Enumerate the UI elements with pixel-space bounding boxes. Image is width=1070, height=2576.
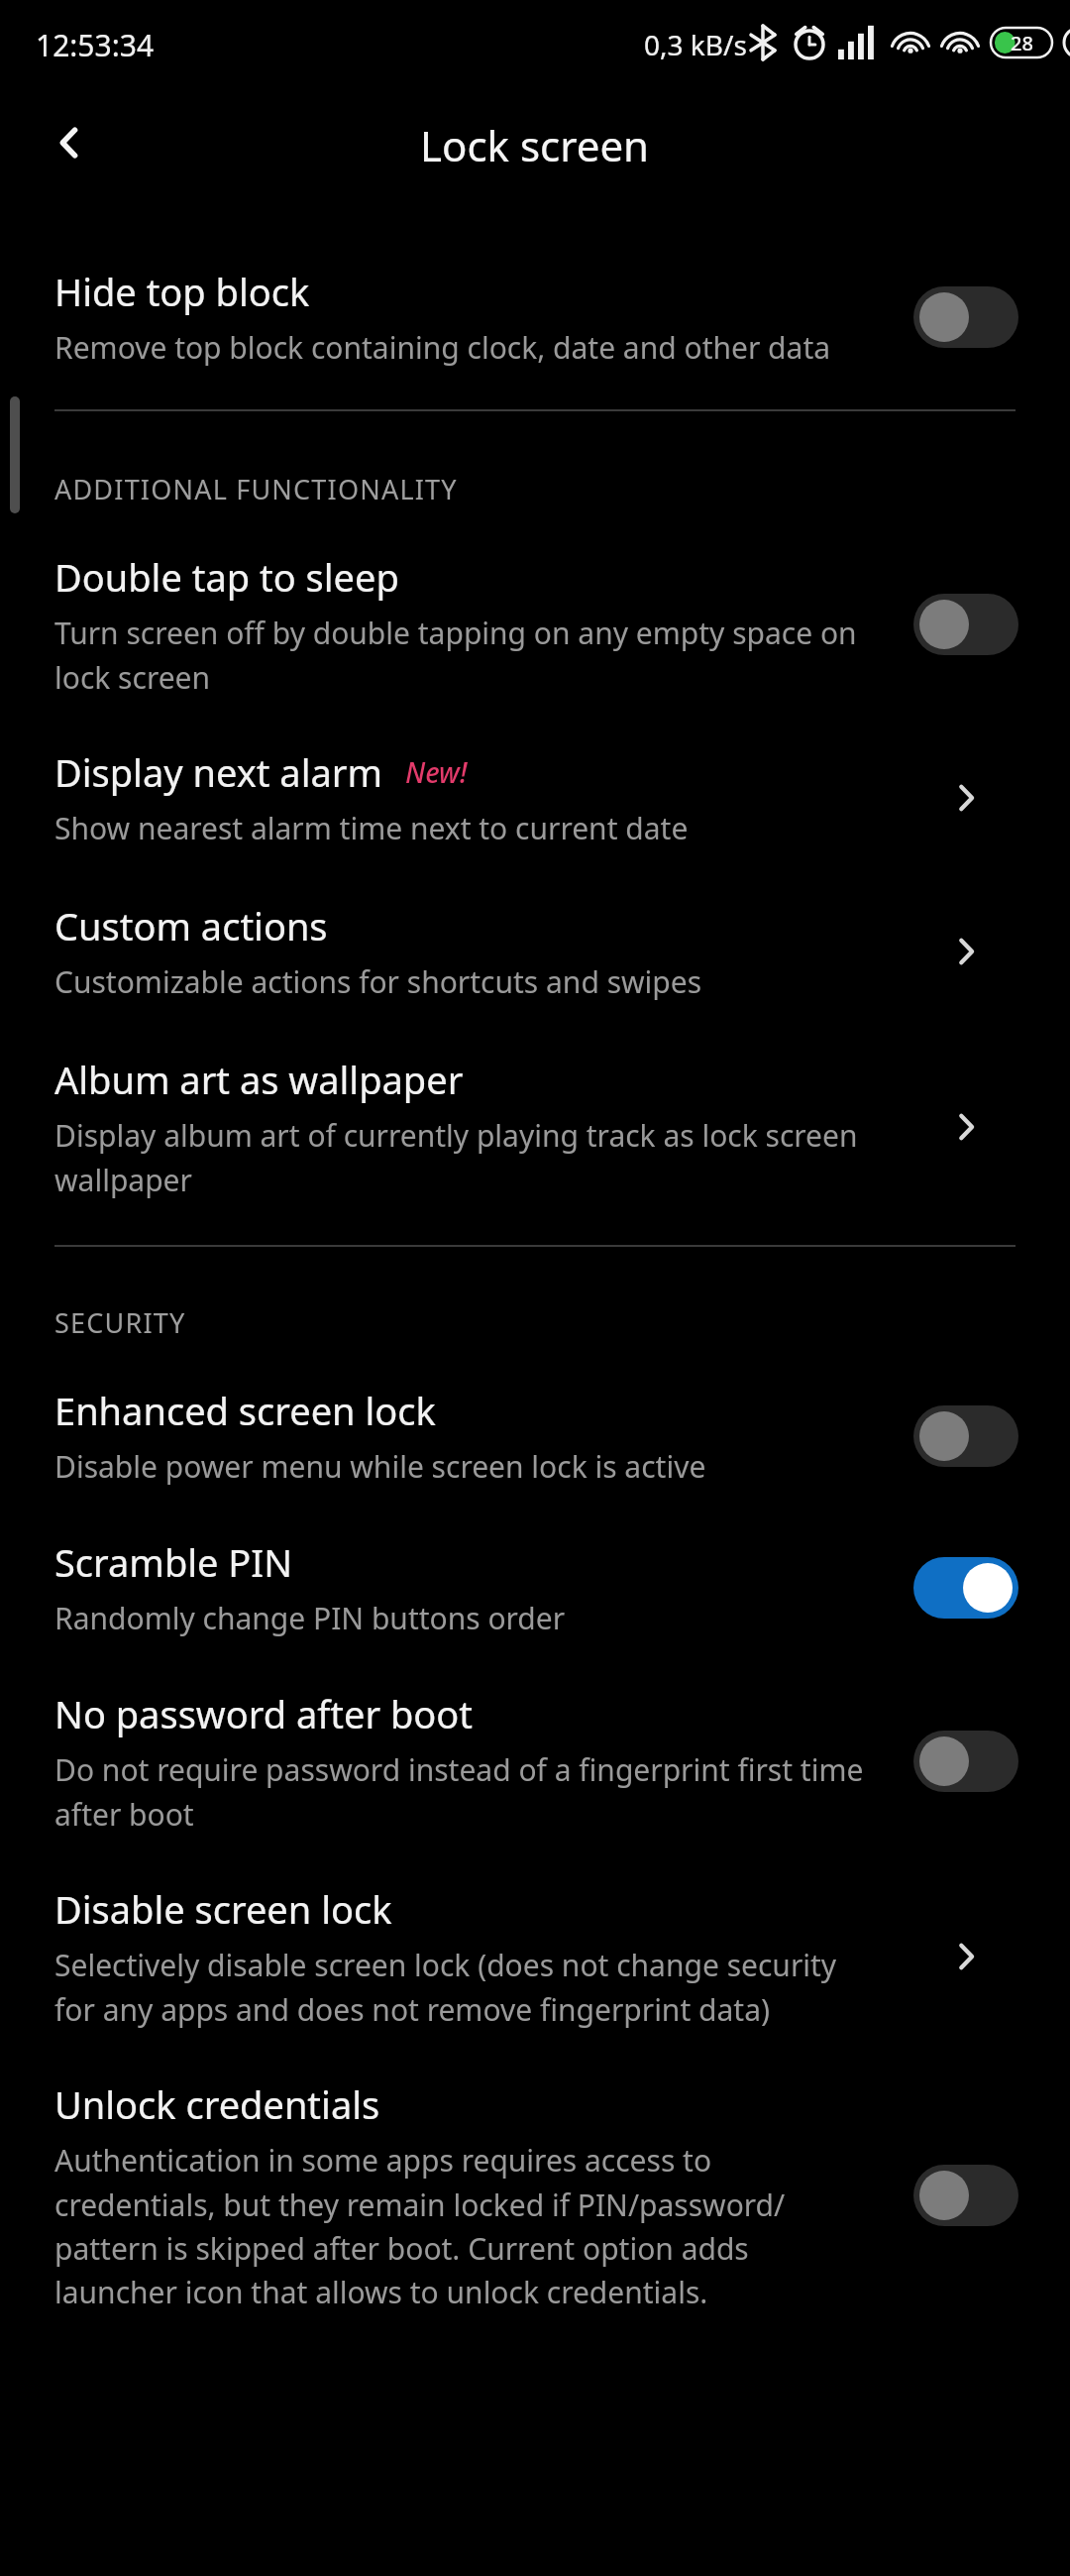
staticText: Display album art of currently playing t…	[54, 1115, 878, 1199]
staticText: SECURITY	[54, 1304, 186, 1341]
staticText: Custom actions	[54, 900, 328, 952]
staticText: Show nearest alarm time next to current …	[54, 808, 689, 848]
staticText: Do not require password instead of a fin…	[54, 1749, 878, 1834]
staticText: Authentication in some apps requires acc…	[54, 2140, 878, 2311]
button[interactable]: Open	[936, 768, 996, 828]
button[interactable]: Toggle off	[913, 594, 1018, 655]
staticText: Lock screen	[420, 117, 650, 173]
staticText: Disable screen lock	[54, 1883, 392, 1935]
staticText: ADDITIONAL FUNCTIONALITY	[54, 471, 458, 507]
staticText: Double tap to sleep	[54, 551, 399, 603]
button[interactable]: Display next alarm	[0, 746, 1070, 900]
staticText: Display next alarm	[54, 746, 383, 798]
button[interactable]: Open	[936, 1097, 996, 1157]
button[interactable]: Toggle off	[913, 286, 1018, 348]
staticText: No password after boot	[54, 1688, 474, 1739]
staticText: Selectively disable screen lock (does no…	[54, 1945, 878, 2029]
staticText: Enhanced screen lock	[54, 1385, 436, 1436]
button[interactable]: Toggle off	[913, 1731, 1018, 1792]
button[interactable]: Double tap to sleep	[0, 551, 1070, 746]
staticText: New!	[405, 753, 468, 791]
button[interactable]: Album art as wallpaper	[0, 1054, 1070, 1245]
button[interactable]: Enhanced screen lock	[0, 1385, 1070, 1536]
staticText: Unlock credentials	[54, 2078, 380, 2130]
button[interactable]: Unlock credentials	[0, 2078, 1070, 2341]
button[interactable]: Toggle off	[913, 1405, 1018, 1467]
staticText: 28	[1011, 30, 1033, 56]
staticText: Remove top block containing clock, date …	[54, 327, 831, 368]
staticText: Customizable actions for shortcuts and s…	[54, 961, 702, 1002]
staticText: Randomly change PIN buttons order	[54, 1598, 566, 1638]
staticText: Disable power menu while screen lock is …	[54, 1446, 706, 1487]
staticText: Scramble PIN	[54, 1536, 293, 1588]
button[interactable]: Hide top block	[0, 236, 1070, 409]
button[interactable]: Scramble PIN	[0, 1536, 1070, 1688]
button[interactable]: Custom actions	[0, 900, 1070, 1054]
button[interactable]: Open	[936, 922, 996, 981]
button[interactable]: Back	[24, 97, 115, 188]
staticText: Hide top block	[54, 266, 310, 317]
button[interactable]: Toggle on	[913, 1557, 1018, 1619]
button[interactable]: Open	[936, 1927, 996, 1986]
button[interactable]: No password after boot	[0, 1688, 1070, 1883]
staticText: 0,3 kB/s	[644, 26, 747, 63]
button[interactable]: Toggle off	[913, 2165, 1018, 2226]
staticText: Album art as wallpaper	[54, 1054, 464, 1105]
staticText: 12:53:34	[36, 25, 155, 65]
staticText: Turn screen off by double tapping on any…	[54, 613, 878, 697]
button[interactable]: Disable screen lock	[0, 1883, 1070, 2078]
